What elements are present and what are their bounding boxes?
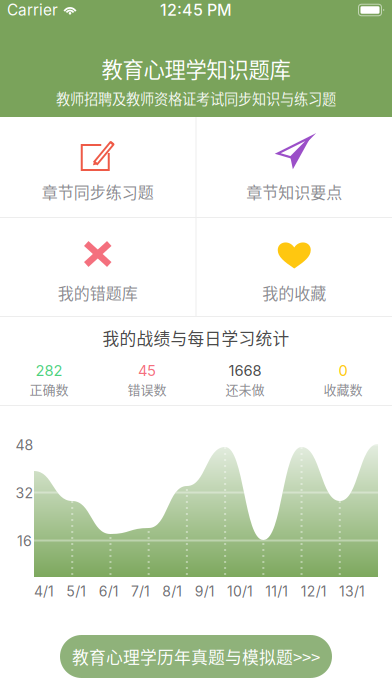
staticText: 12:45 PM (160, 0, 232, 20)
staticText: 45 (138, 362, 156, 379)
staticText: 8/1 (162, 583, 182, 600)
staticText: 12/1 (301, 583, 327, 600)
button[interactable]: 我的错题库 (0, 218, 195, 316)
staticText: 教育心理学历年真题与模拟题>>> (72, 644, 320, 669)
staticText: 我的战绩与每日学习统计 (102, 326, 289, 350)
staticText: 章节知识要点 (246, 180, 342, 203)
staticText: 48 (15, 436, 33, 453)
staticText: 32 (15, 484, 33, 501)
staticText: 16 (17, 532, 32, 549)
staticText: 11/1 (265, 583, 288, 600)
staticText: 4/1 (34, 583, 54, 600)
button[interactable]: 教育心理学历年真题与模拟题>>> (60, 635, 332, 678)
staticText: 282 (35, 362, 62, 379)
staticText: 10/1 (227, 583, 253, 600)
staticText: 0 (338, 362, 347, 379)
staticText: 还未做 (225, 379, 264, 398)
button[interactable]: 我的收藏 (196, 218, 392, 316)
staticText: 章节同步练习题 (42, 180, 154, 203)
staticText: 5/1 (66, 583, 86, 600)
staticText: 1668 (228, 362, 261, 379)
staticText: 我的错题库 (58, 281, 138, 304)
staticText: 我的收藏 (262, 281, 326, 304)
button[interactable]: 章节同步练习题 (0, 117, 195, 217)
staticText: 13/1 (339, 583, 365, 600)
staticText: 收藏数 (323, 379, 362, 398)
staticText: 教师招聘及教师资格证考试同步知识与练习题 (56, 88, 336, 109)
staticText: 6/1 (99, 583, 119, 600)
staticText: Carrier (7, 1, 58, 19)
staticText: 教育心理学知识题库 (101, 53, 290, 84)
staticText: 9/1 (195, 583, 215, 600)
button[interactable]: 章节知识要点 (196, 117, 392, 217)
staticText: 7/1 (131, 583, 150, 600)
staticText: 错误数 (127, 379, 166, 398)
staticText: 正确数 (29, 379, 68, 398)
